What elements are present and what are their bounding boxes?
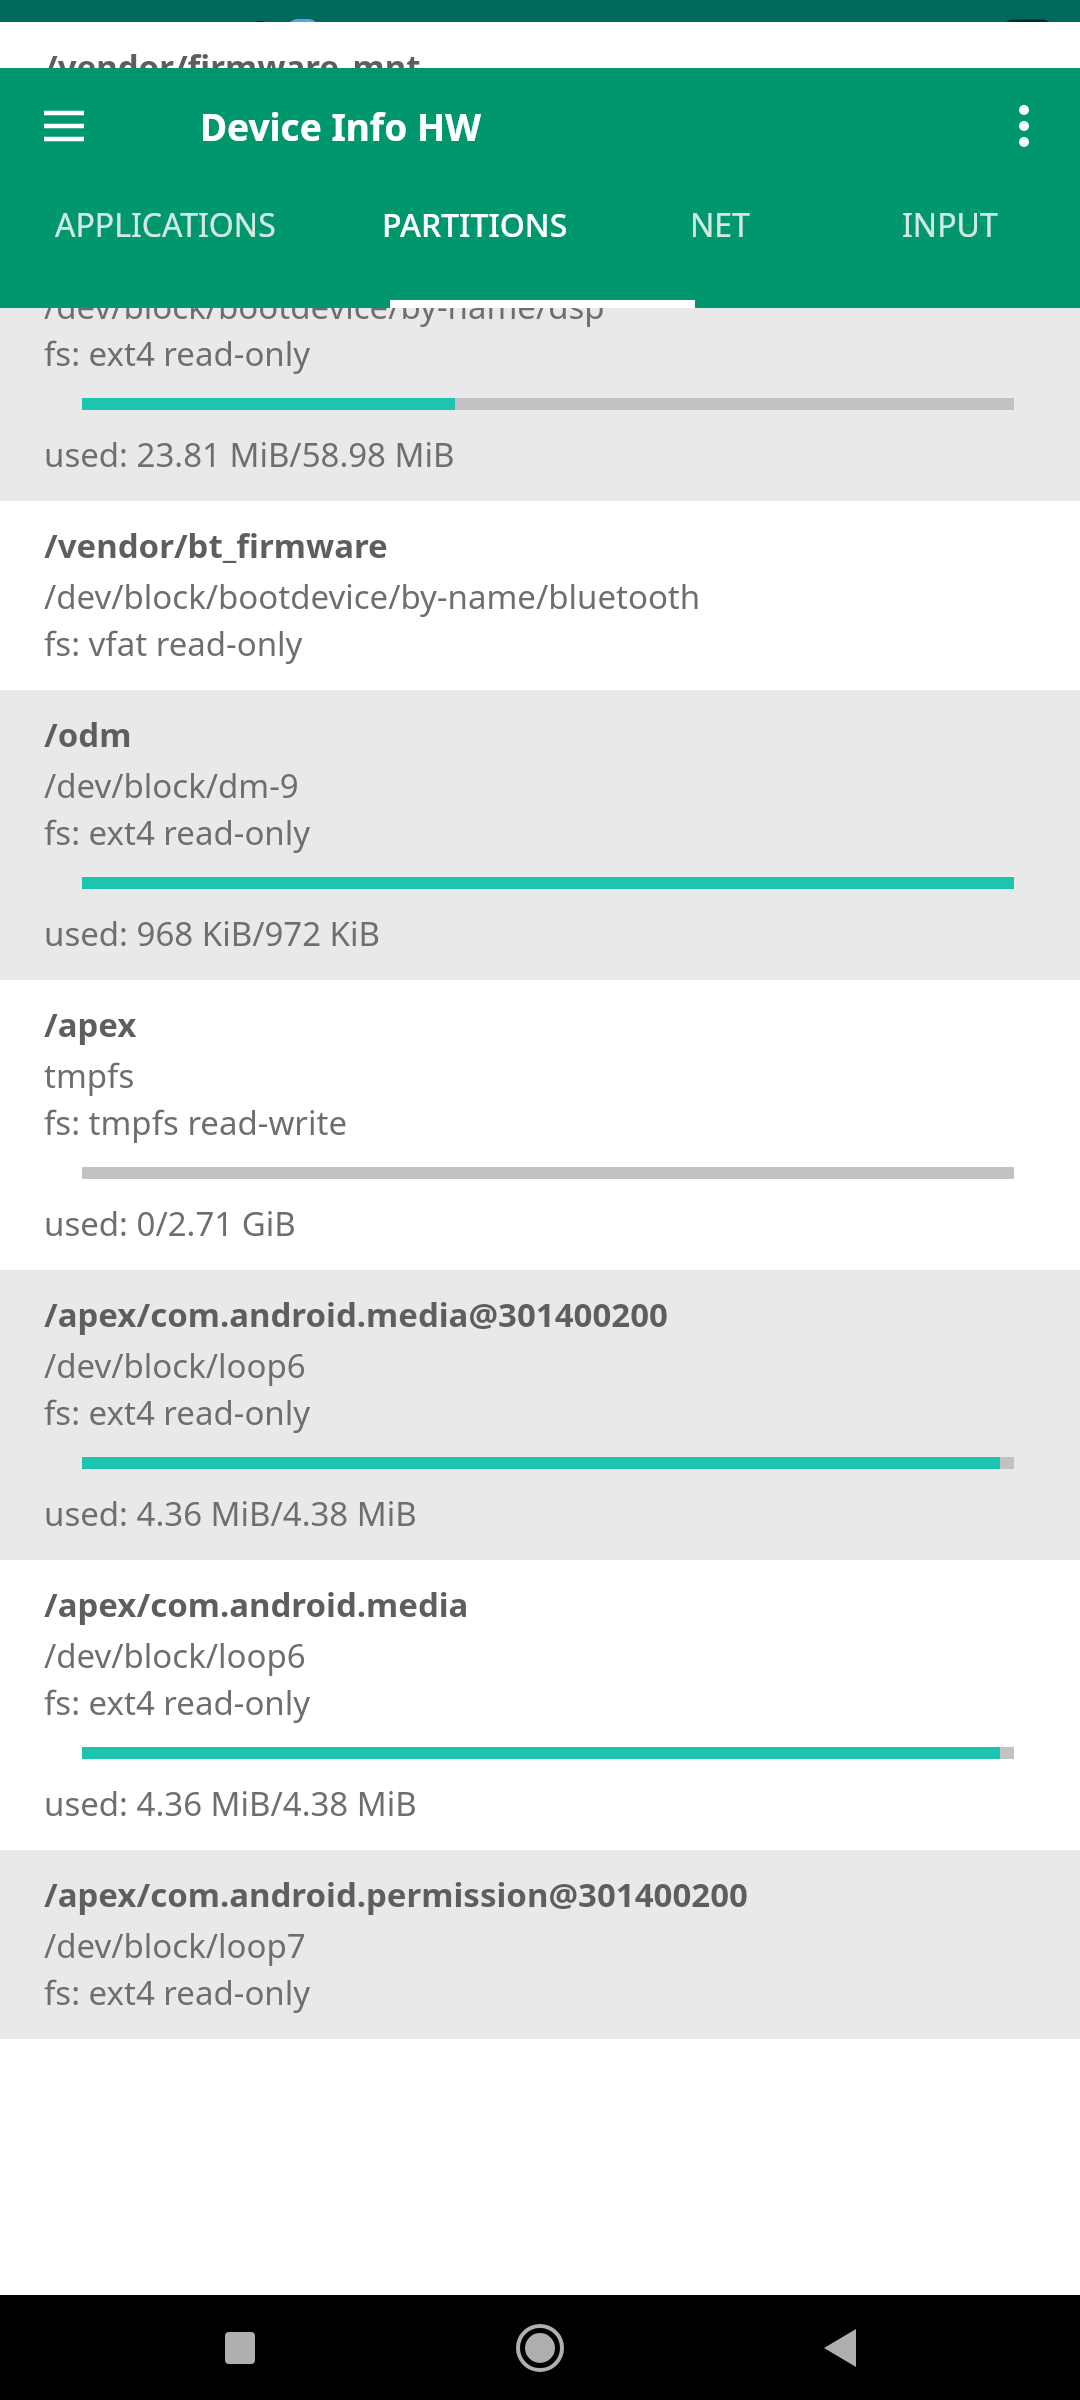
staticText: /vendor/dsp [44, 233, 246, 278]
button[interactable]: PARTITIONS [330, 203, 620, 308]
button[interactable]: /apex/com.android.media [0, 1560, 1080, 1850]
button[interactable]: /apex/com.android.permission@301400200 [0, 1850, 1080, 2039]
button[interactable]: /vendor/dsp [0, 211, 1080, 501]
button[interactable]: More options [988, 90, 1060, 162]
staticText: /dev/block/dm-9 [44, 763, 299, 808]
staticText: used: 968 KiB/972 KiB [44, 911, 381, 956]
button[interactable]: /apex [0, 980, 1080, 1270]
staticText: PARTITIONS [382, 203, 568, 247]
staticText: tmpfs [44, 1053, 135, 1098]
staticText: used: 0/2.71 GiB [44, 1201, 296, 1246]
button[interactable]: INPUT [820, 203, 1080, 308]
staticText: NET [690, 203, 750, 247]
button[interactable]: Recent apps [90, 2295, 390, 2400]
button[interactable]: Home [390, 2295, 690, 2400]
staticText: /dev/block/bootdevice/by-name/bluetooth [44, 574, 701, 619]
button[interactable]: Back [690, 2295, 990, 2400]
staticText: fs: ext4 read-only [44, 1970, 311, 2015]
staticText: /dev/block/loop7 [44, 1923, 306, 1968]
button[interactable]: /odm [0, 690, 1080, 980]
staticText: /dev/block/loop6 [44, 1343, 306, 1388]
staticText: fs: ext4 read-only [44, 1680, 311, 1725]
staticText: /vendor/bt_firmware [44, 523, 388, 568]
staticText: /dev/block/loop6 [44, 1633, 306, 1678]
button[interactable]: /apex/com.android.media@301400200 [0, 1270, 1080, 1560]
staticText: Device Info HW [200, 101, 482, 151]
staticText: /vendor/firmware_mnt [44, 44, 421, 89]
button[interactable]: NET [620, 203, 820, 308]
staticText: /apex/com.android.media@301400200 [44, 1292, 668, 1337]
staticText: used: 4.36 MiB/4.38 MiB [44, 1491, 417, 1536]
staticText: fs: tmpfs read-write [44, 1100, 348, 1145]
staticText: 20:58 [148, 13, 228, 55]
staticText: fs: ext4 read-only [44, 331, 311, 376]
staticText: /apex/com.android.permission@301400200 [44, 1872, 748, 1917]
staticText: /apex [44, 1002, 137, 1047]
button[interactable]: APPLICATIONS [0, 203, 330, 308]
button[interactable]: Open navigation menu [28, 90, 100, 162]
staticText: fs: ext4 read-only [44, 810, 311, 855]
staticText: 54 [1017, 21, 1039, 47]
staticText: /apex/com.android.media [44, 1582, 469, 1627]
staticText: /dev/block/bootdevice/by-name/dsp [44, 284, 605, 329]
staticText: used: 23.81 MiB/58.98 MiB [44, 432, 455, 477]
staticText: used: 4.36 MiB/4.38 MiB [44, 1781, 417, 1826]
staticText: fs: vfat read-only [44, 621, 303, 666]
staticText: fs: ext4 read-only [44, 1390, 311, 1435]
staticText: /odm [44, 712, 132, 757]
button[interactable]: /vendor/bt_firmware [0, 501, 1080, 690]
button[interactable]: /vendor/firmware_mnt [0, 22, 1080, 211]
staticText: INPUT [902, 203, 998, 247]
staticText: APPLICATIONS [55, 203, 276, 247]
staticText: /dev/block/bootdevice/by-name/modem [44, 95, 669, 140]
